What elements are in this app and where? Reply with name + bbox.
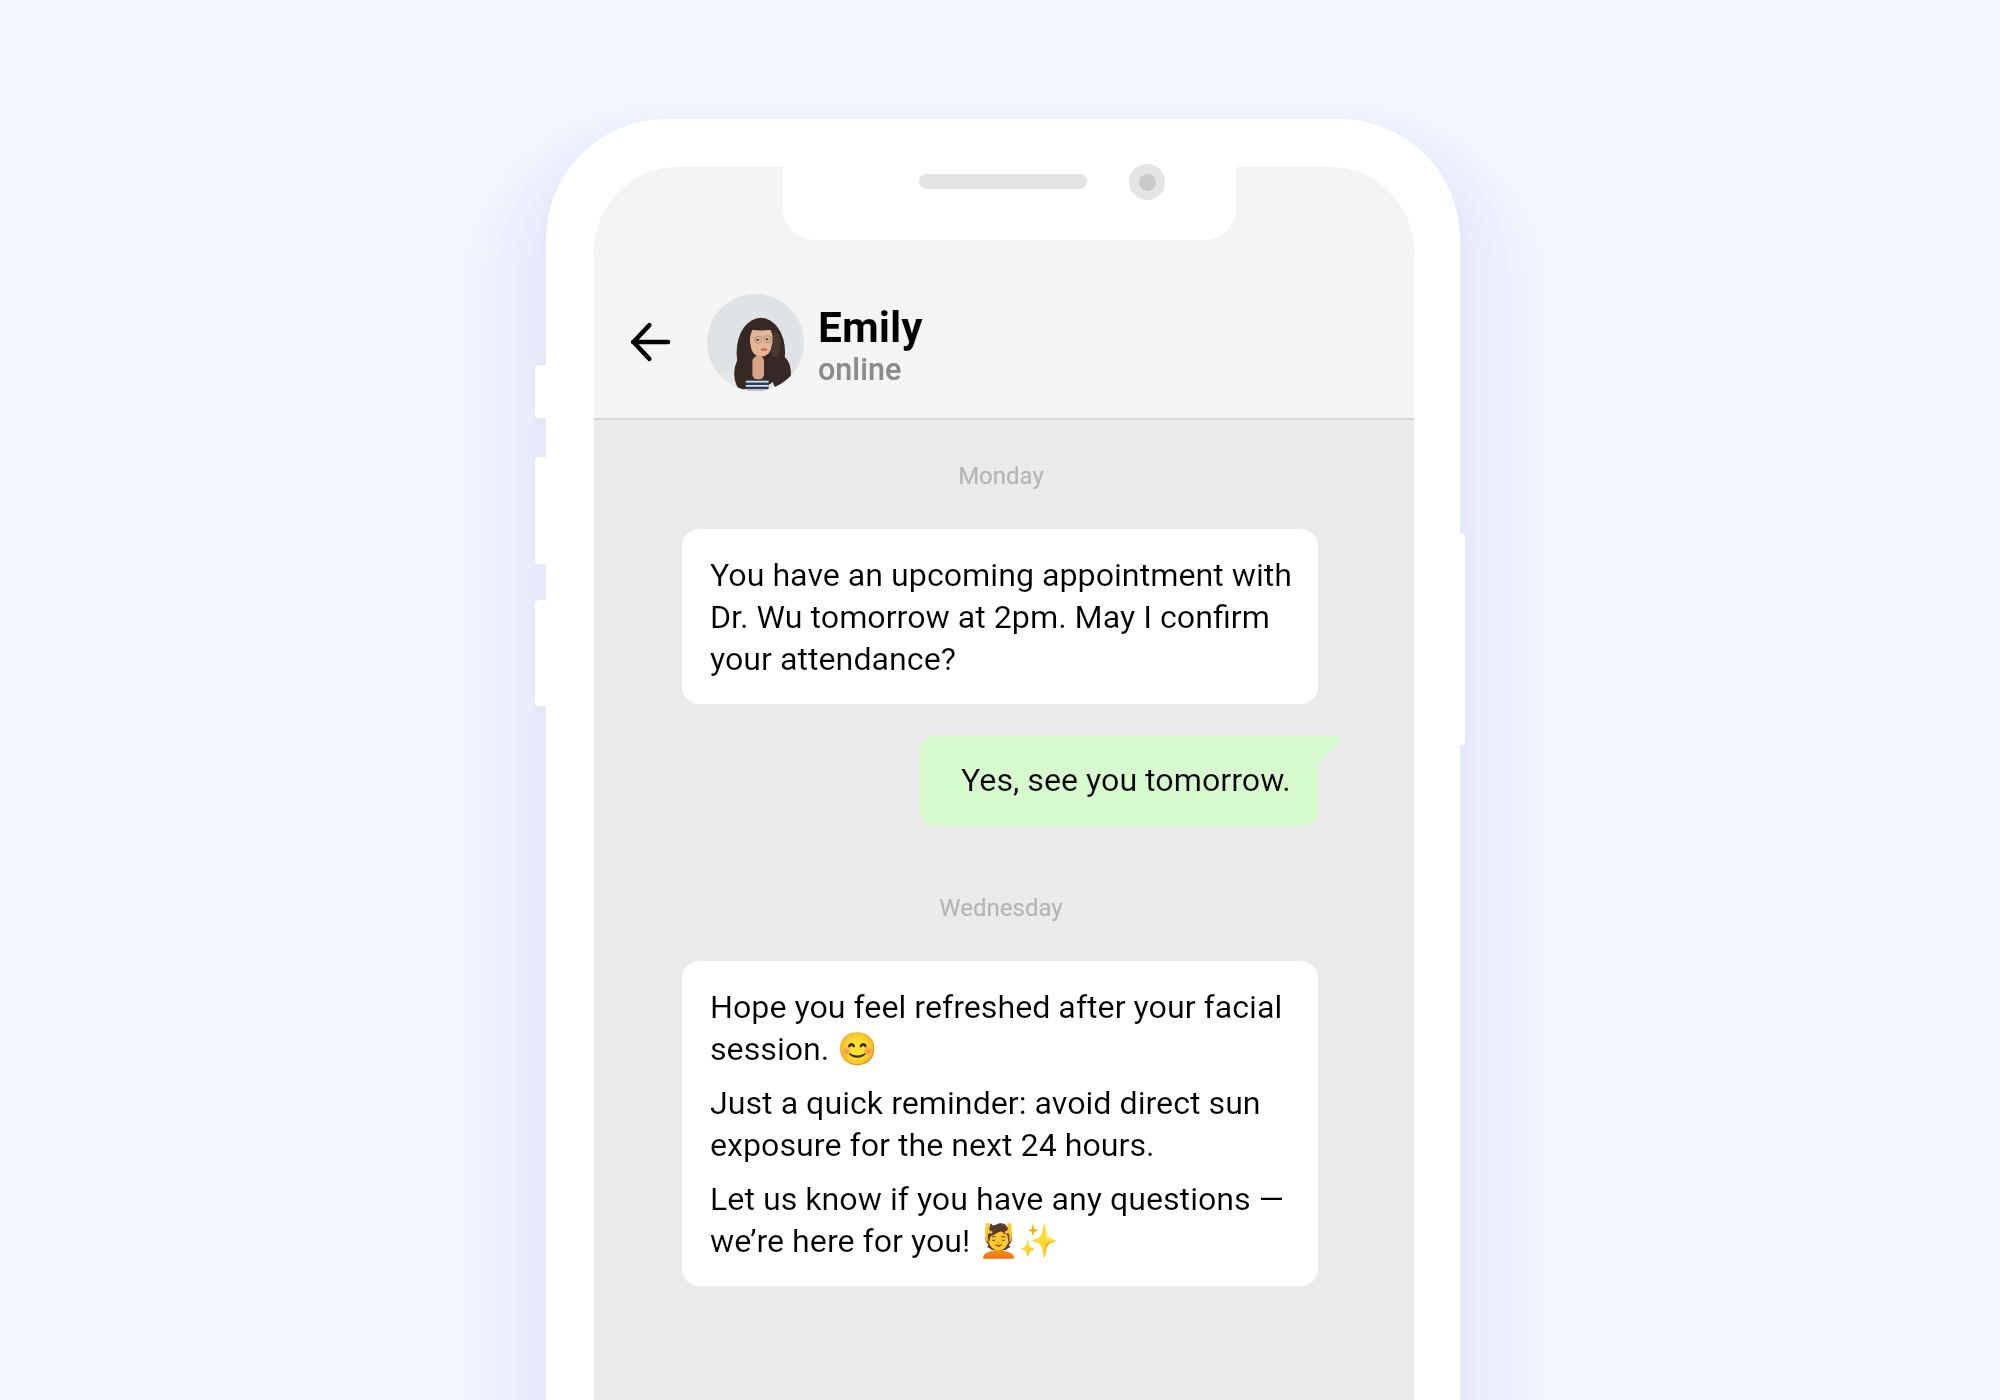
staticText: Wednesday [939, 894, 1063, 922]
staticText: Just a quick reminder: avoid direct sun … [710, 1084, 1261, 1164]
button[interactable]: Emily [707, 294, 1027, 391]
staticText: Emily [818, 303, 923, 353]
button[interactable]: Back [620, 312, 680, 372]
staticText: Monday [958, 462, 1044, 490]
staticText: You have an upcoming appointment with Dr… [710, 556, 1293, 678]
staticText: Yes, see you tomorrow. [961, 761, 1291, 799]
button[interactable]: Hope you feel refreshed after your facia… [682, 961, 1318, 1286]
staticText: Hope you feel refreshed after your facia… [710, 988, 1283, 1068]
button[interactable]: Yes, see you tomorrow. [920, 736, 1342, 826]
staticText: online [818, 352, 902, 388]
staticText: Let us know if you have any questions — … [710, 1180, 1284, 1260]
button[interactable]: You have an upcoming appointment with Dr… [682, 529, 1318, 704]
